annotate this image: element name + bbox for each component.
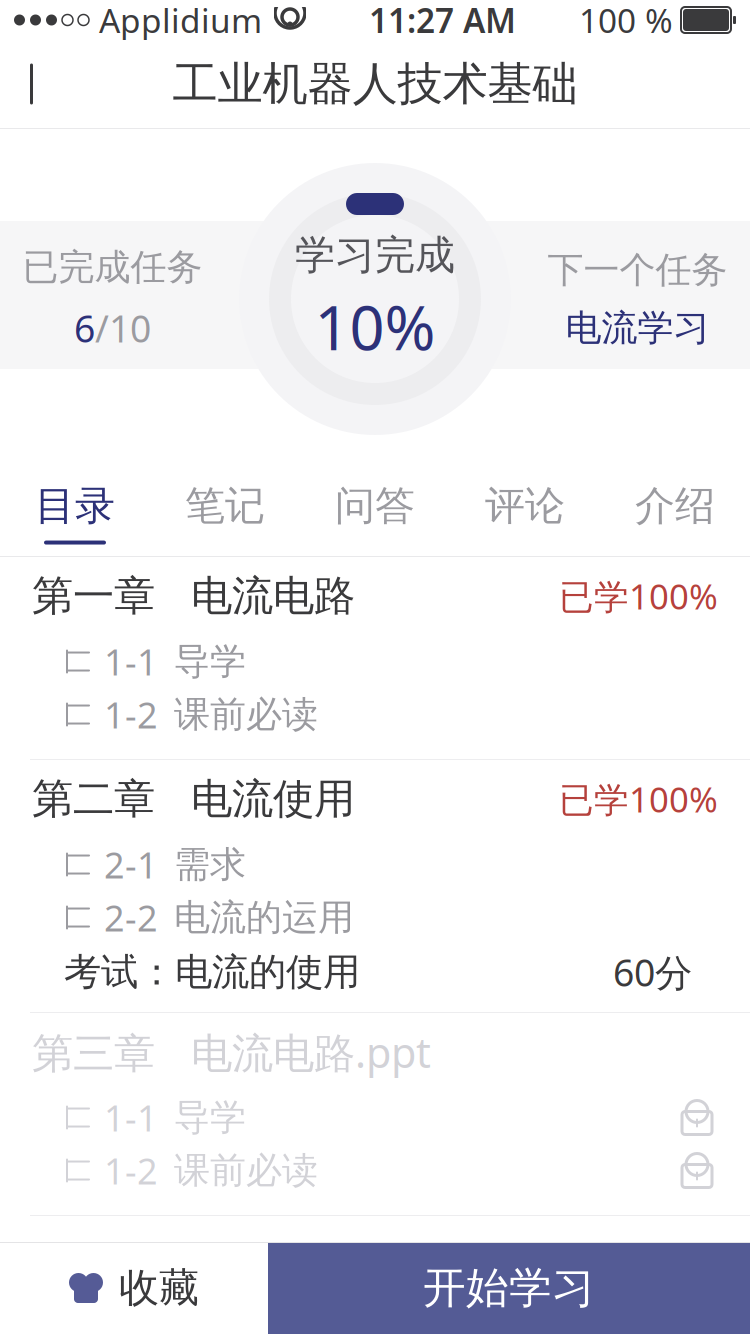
button[interactable]: 评论	[450, 469, 600, 557]
staticText: 已完成任务	[22, 245, 202, 289]
staticText: 已学100%	[559, 776, 718, 822]
staticText: 2-1	[104, 841, 158, 888]
staticText: 开始学习	[423, 1262, 595, 1314]
button[interactable]: Back	[0, 44, 72, 124]
button[interactable]: 第二章 电流使用	[0, 760, 750, 838]
button[interactable]: 开始学习	[268, 1242, 750, 1334]
staticText: 工业机器人技术基础	[172, 56, 577, 112]
staticText: 目录	[35, 481, 115, 530]
staticText: 11:27 AM	[369, 0, 516, 42]
staticText: 需求	[174, 842, 246, 887]
button[interactable]: 2-1	[0, 838, 750, 891]
staticText: 笔记	[185, 481, 265, 530]
staticText: 导学	[174, 639, 246, 684]
staticText: 第二章 电流使用	[32, 774, 355, 824]
staticText: 评论	[485, 481, 565, 530]
staticText: 1-1	[104, 1094, 158, 1141]
staticText: 1-2	[104, 691, 158, 738]
staticText: 课前必读	[174, 692, 318, 737]
staticText: 导学	[174, 1095, 246, 1140]
staticText: 已学100%	[559, 573, 718, 619]
staticText: 考试：电流的使用	[64, 949, 360, 995]
button[interactable]: 2-2	[0, 891, 750, 944]
button[interactable]: 考试：电流的使用	[0, 944, 750, 1000]
staticText: 课前必读	[174, 1148, 318, 1193]
staticText: 第一章 电流电路	[32, 571, 355, 621]
button[interactable]: 问答	[300, 469, 450, 557]
staticText: 1-2	[104, 1147, 158, 1194]
staticText: 问答	[335, 481, 415, 530]
button[interactable]: 目录	[0, 469, 150, 557]
staticText: 电流学习	[565, 306, 709, 350]
staticText: 第三章 电流电路.ppt	[32, 1025, 431, 1079]
button[interactable]: 1-1	[0, 1091, 750, 1144]
staticText: 下一个任务	[547, 248, 727, 292]
button[interactable]: 收藏	[0, 1242, 268, 1334]
staticText: 6	[74, 303, 95, 353]
staticText: 介绍	[635, 481, 715, 530]
staticText: 收藏	[119, 1263, 199, 1312]
button[interactable]: 1-1	[0, 635, 750, 688]
button[interactable]: 笔记	[150, 469, 300, 557]
staticText: 60分	[613, 947, 692, 997]
button[interactable]: 1-2	[0, 1144, 750, 1197]
staticText: Applidium	[99, 0, 262, 42]
button[interactable]: 1-2	[0, 688, 750, 741]
staticText: 电流的运用	[174, 895, 354, 940]
staticText: 2-2	[104, 894, 158, 941]
staticText: /10	[95, 303, 151, 353]
button[interactable]: 第三章 电流电路.ppt	[0, 1013, 750, 1091]
button[interactable]: 介绍	[600, 469, 750, 557]
staticText: 10%	[314, 286, 435, 367]
button[interactable]: 第一章 电流电路	[0, 557, 750, 635]
staticText: 100 %	[579, 0, 673, 42]
staticText: 1-1	[104, 638, 158, 685]
staticText: 学习完成	[295, 231, 455, 280]
